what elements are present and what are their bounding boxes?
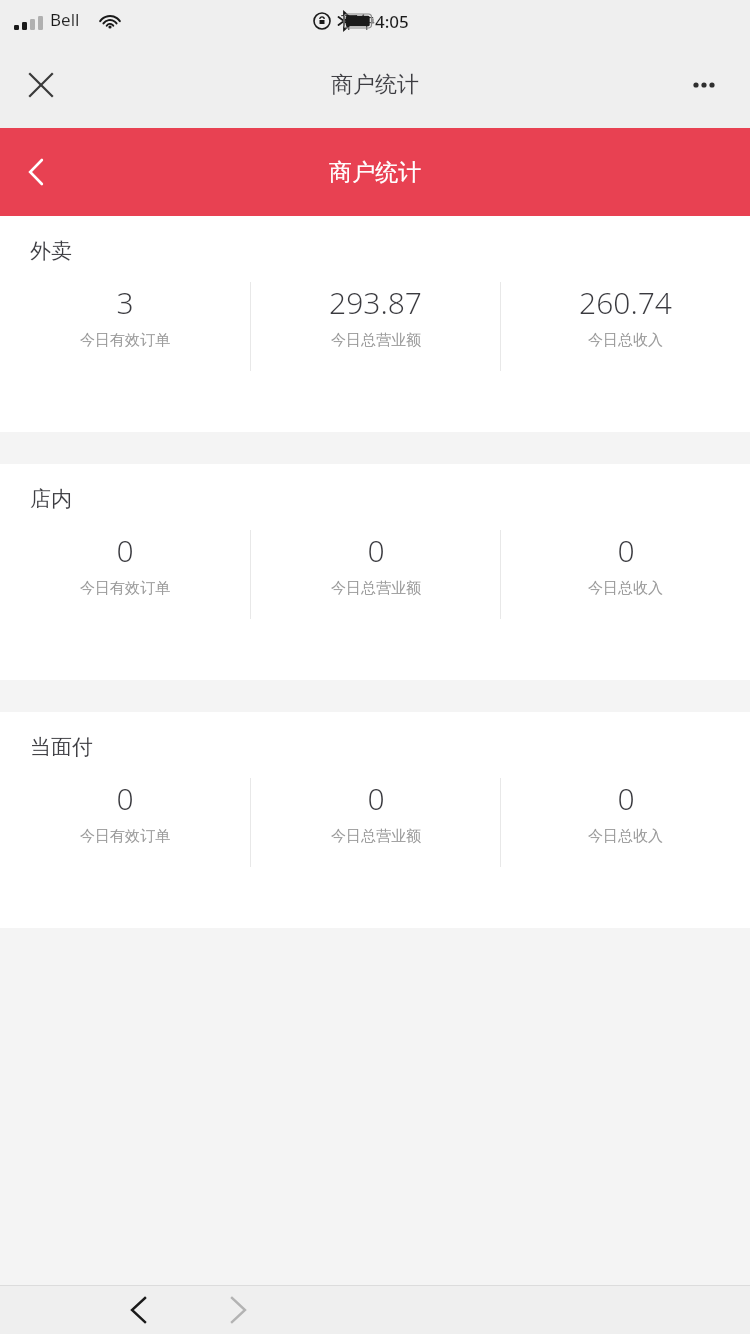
button[interactable]: Forward	[212, 1286, 264, 1334]
button[interactable]: 店内	[0, 464, 750, 680]
button[interactable]: Close	[12, 56, 70, 114]
staticText: 260.74	[579, 282, 672, 323]
button[interactable]: 当面付	[0, 712, 750, 928]
staticText: 0	[367, 778, 385, 819]
button[interactable]: 外卖	[0, 216, 750, 432]
staticText: 今日有效订单	[80, 331, 170, 350]
staticText: 今日有效订单	[80, 579, 170, 598]
button[interactable]: More options	[675, 56, 733, 114]
staticText: 0	[617, 530, 635, 571]
staticText: 0	[367, 530, 385, 571]
button[interactable]: Back	[112, 1286, 164, 1334]
staticText: 当面付	[30, 734, 93, 760]
staticText: 0	[116, 778, 134, 819]
staticText: 今日总营业额	[331, 331, 421, 350]
staticText: 今日总营业额	[331, 827, 421, 846]
staticText: 293.87	[329, 282, 422, 323]
staticText: 3	[116, 282, 134, 323]
staticText: 0	[617, 778, 635, 819]
button[interactable]: Back	[8, 144, 64, 200]
staticText: 0	[116, 530, 134, 571]
staticText: 今日总营业额	[331, 579, 421, 598]
staticText: 商户统计	[329, 158, 421, 187]
staticText: 今日有效订单	[80, 827, 170, 846]
staticText: Bell	[50, 8, 80, 31]
staticText: 今日总收入	[588, 579, 663, 598]
staticText: 店内	[30, 486, 72, 512]
staticText: 外卖	[30, 238, 72, 264]
staticText: 今日总收入	[588, 827, 663, 846]
staticText: 商户统计	[331, 71, 419, 99]
staticText: 今日总收入	[588, 331, 663, 350]
staticText: 下午4:05	[341, 10, 409, 33]
